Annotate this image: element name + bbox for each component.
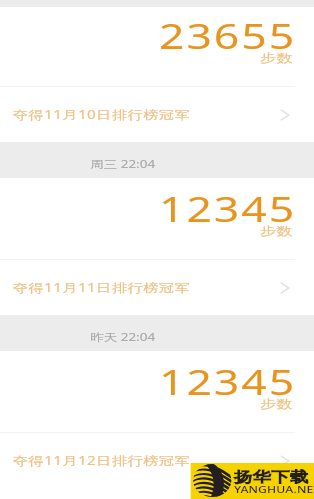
other: Open leaderboard [276, 454, 294, 468]
other: Open leaderboard [276, 108, 294, 122]
staticText: 步数 [260, 51, 294, 65]
staticText: 12345 [159, 185, 297, 233]
staticText: 夺得11月10日排行榜冠军 [13, 106, 191, 122]
button[interactable]: 夺得11月11日排行榜冠军 [0, 260, 314, 315]
other: Open leaderboard [276, 281, 294, 295]
staticText: 23655 [159, 12, 297, 60]
staticText: 步数 [260, 224, 294, 238]
other: 扬华下载 YANGHUA.NET [191, 463, 314, 499]
staticText: 昨天 22:04 [90, 330, 156, 344]
button[interactable]: 12345 [0, 191, 314, 253]
staticText: 夺得11月11日排行榜冠军 [13, 279, 191, 295]
staticText: 周三 22:04 [90, 157, 156, 171]
button[interactable]: 12345 [0, 364, 314, 426]
button[interactable]: 23655 [0, 18, 314, 80]
staticText: 步数 [260, 397, 294, 411]
staticText: 12345 [159, 358, 297, 406]
staticText: YANGHUA.NET [234, 483, 314, 496]
staticText: 夺得11月12日排行榜冠军 [13, 452, 191, 468]
staticText: 扬华下载 [234, 468, 309, 486]
button[interactable]: 夺得11月12日排行榜冠军 [0, 433, 314, 488]
button[interactable]: 夺得11月10日排行榜冠军 [0, 87, 314, 142]
